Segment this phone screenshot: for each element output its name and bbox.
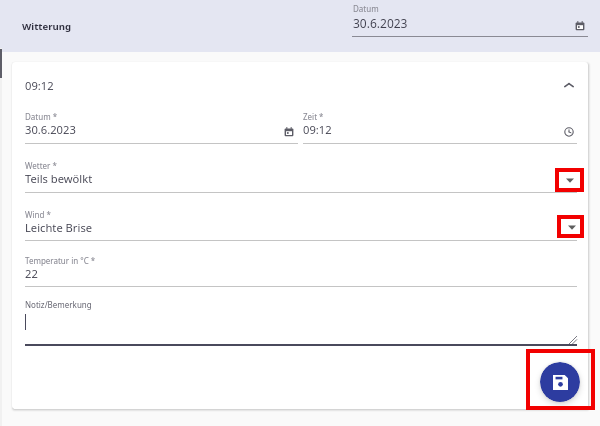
staticText: Zeit * — [303, 111, 324, 122]
staticText: Notiz/Bemerkung — [25, 299, 92, 310]
button[interactable]: Wind auswählen — [560, 215, 584, 239]
button[interactable]: Wind — [25, 206, 555, 241]
staticText: 09:12 — [25, 78, 54, 93]
button[interactable]: Datum wählen — [352, 0, 588, 40]
button[interactable]: Speichern — [540, 362, 580, 402]
staticText: Temperatur in °C * — [25, 255, 96, 266]
button[interactable]: Temperatur in Grad Celsius — [25, 252, 577, 287]
button[interactable]: Datum — [25, 108, 298, 144]
staticText: Datum — [353, 3, 379, 14]
staticText: 30.6.2023 — [353, 15, 408, 31]
staticText: Datum * — [25, 111, 58, 122]
button[interactable]: Wetter — [25, 157, 555, 193]
staticText: 30.6.2023 — [25, 122, 76, 137]
staticText: 22 — [25, 266, 38, 281]
staticText: Teils bewölkt — [25, 171, 93, 186]
staticText: Leichte Brise — [25, 220, 93, 235]
staticText: Wind * — [25, 209, 51, 220]
button[interactable]: Einklappen — [556, 72, 582, 98]
button[interactable]: Wetter auswählen — [558, 168, 582, 192]
staticText: Witterung — [22, 20, 72, 33]
button[interactable]: Zeit — [303, 108, 577, 144]
staticText: 09:12 — [303, 122, 332, 137]
staticText: Wetter * — [25, 160, 57, 171]
button[interactable]: Notiz/Bemerkung — [25, 296, 577, 346]
